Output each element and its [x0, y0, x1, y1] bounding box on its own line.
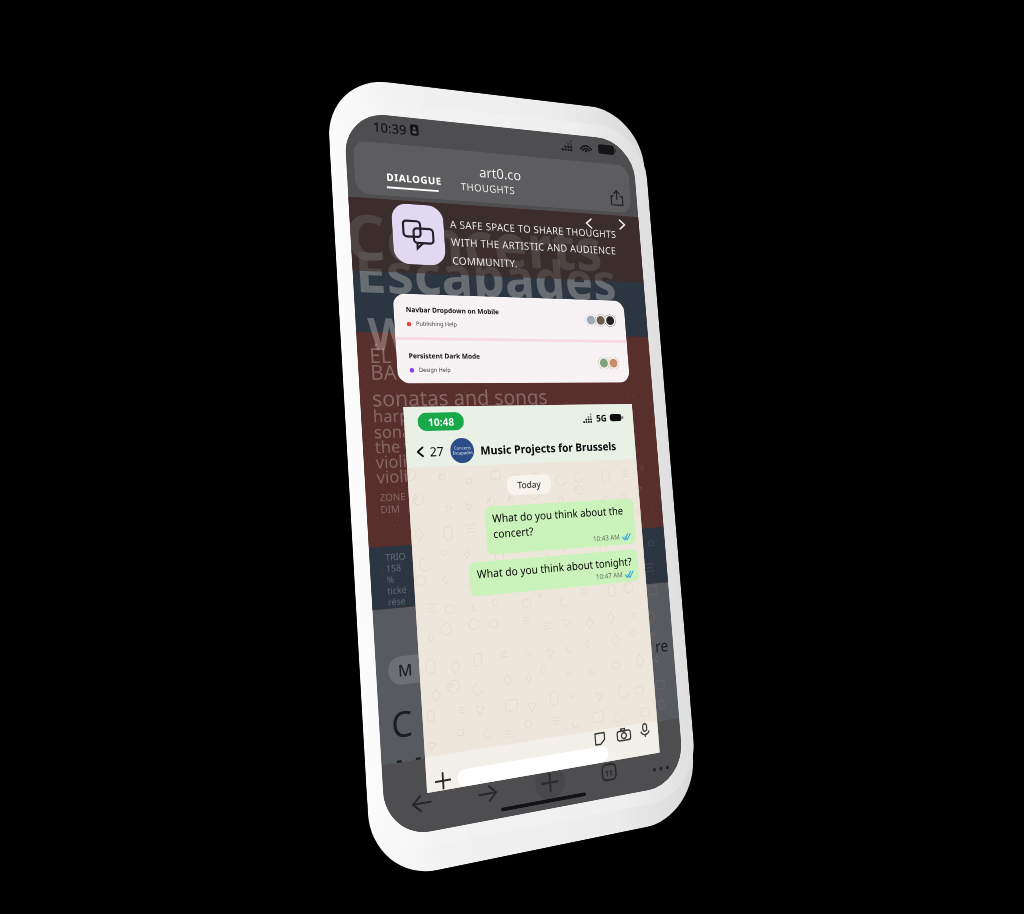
staticText: M — [397, 658, 413, 682]
staticText: M — [393, 744, 426, 797]
button[interactable]: Persistent Dark Mode — [408, 340, 621, 383]
button[interactable]: M — [387, 651, 445, 686]
staticText: ZONE DIM — [379, 489, 407, 516]
button[interactable] — [457, 745, 609, 788]
staticText: 11 — [605, 767, 614, 779]
staticText: Navbar Dropdown on Mobile — [405, 304, 499, 316]
staticText: 10:48 — [427, 414, 455, 429]
staticText: harpsichord PABLO LASCANO sonatas and so… — [372, 402, 589, 488]
staticText: Concerts — [348, 191, 605, 288]
staticText: re — [654, 634, 669, 657]
staticText: art0.co — [478, 162, 522, 184]
staticText: What do you think about tonight? — [476, 554, 633, 582]
button[interactable]: Tabs — [600, 761, 617, 782]
staticText: Publishing Help — [416, 320, 458, 328]
staticText: C — [390, 698, 414, 749]
button[interactable]: Previous — [582, 216, 596, 231]
staticText: 27 — [429, 442, 444, 460]
staticText: 10:39 — [372, 117, 407, 138]
staticText: Concerts Escapades — [452, 444, 473, 457]
button[interactable]: Attach — [434, 770, 452, 792]
staticText: DIALOGUE — [386, 169, 442, 188]
staticText: sonatas and songs — [371, 382, 549, 412]
staticText: A SAFE SPACE TO SHARE THOUGHTS WITH THE … — [449, 217, 620, 275]
staticText: 10:47 AM — [596, 570, 623, 581]
staticText: What do you think about the concert? — [492, 503, 630, 541]
button[interactable]: DIALOGUE — [386, 169, 442, 188]
button[interactable]: More — [650, 756, 671, 782]
staticText: Escapades — [352, 232, 619, 315]
button[interactable]: THOUGHTS — [460, 179, 516, 197]
button[interactable]: Forward — [476, 780, 500, 808]
staticText: Persistent Dark Mode — [408, 350, 481, 361]
button[interactable]: Voice message — [639, 723, 651, 738]
staticText: TRIO 158 % tické rése — [385, 549, 409, 608]
button[interactable]: Camera — [617, 726, 631, 743]
staticText: f — [396, 795, 409, 838]
button[interactable]: Share — [609, 189, 624, 206]
button[interactable]: New tab — [534, 763, 566, 802]
button[interactable]: Sticker — [593, 731, 606, 746]
staticText: ÉL BA — [368, 341, 398, 386]
button[interactable]: Back — [413, 445, 427, 459]
staticText: Today — [517, 478, 541, 491]
staticText: Design Help — [419, 366, 452, 374]
button[interactable]: art0.co — [353, 140, 632, 213]
button[interactable] — [391, 203, 446, 266]
staticText: W — [366, 302, 413, 364]
button[interactable]: Next — [615, 217, 629, 232]
staticText: Music Projects for Brussels — [480, 438, 616, 458]
button[interactable]: Navbar Dropdown on Mobile — [405, 294, 617, 340]
button[interactable]: Back — [409, 789, 434, 818]
staticText: 5G — [596, 411, 607, 424]
staticText: 10:43 AM — [593, 532, 620, 543]
